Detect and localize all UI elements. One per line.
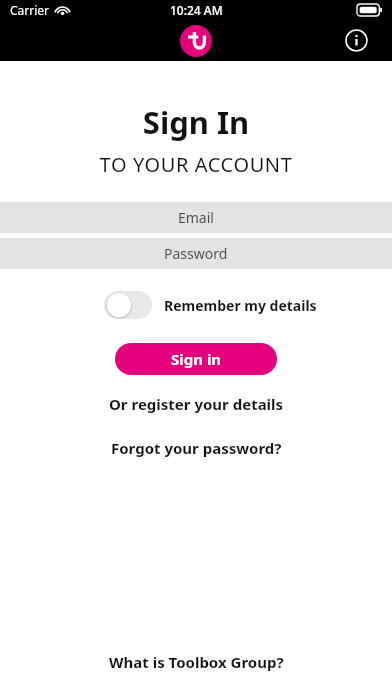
button[interactable]: Remember my details toggle, off: [104, 291, 152, 319]
staticText: Remember my details: [164, 296, 317, 315]
button[interactable]: Email: [0, 202, 392, 233]
staticText: Email: [178, 208, 214, 227]
staticText: Sign in: [171, 349, 222, 369]
button[interactable]: Information: [344, 28, 368, 52]
button[interactable]: Toolbox Group home: [180, 25, 212, 57]
staticText: Password: [164, 244, 228, 263]
button[interactable]: Forgot your password?: [105, 436, 288, 460]
staticText: Sign In: [0, 101, 392, 143]
button[interactable]: What is Toolbox Group?: [103, 650, 290, 674]
staticText: 10:24 AM: [170, 2, 223, 18]
staticText: TO YOUR ACCOUNT: [0, 151, 392, 178]
button[interactable]: Or register your details: [103, 392, 290, 416]
button[interactable]: Sign in: [115, 343, 277, 375]
button[interactable]: Remember my details toggle, off: [104, 291, 317, 319]
staticText: Carrier: [10, 2, 50, 18]
button[interactable]: Password: [0, 238, 392, 269]
